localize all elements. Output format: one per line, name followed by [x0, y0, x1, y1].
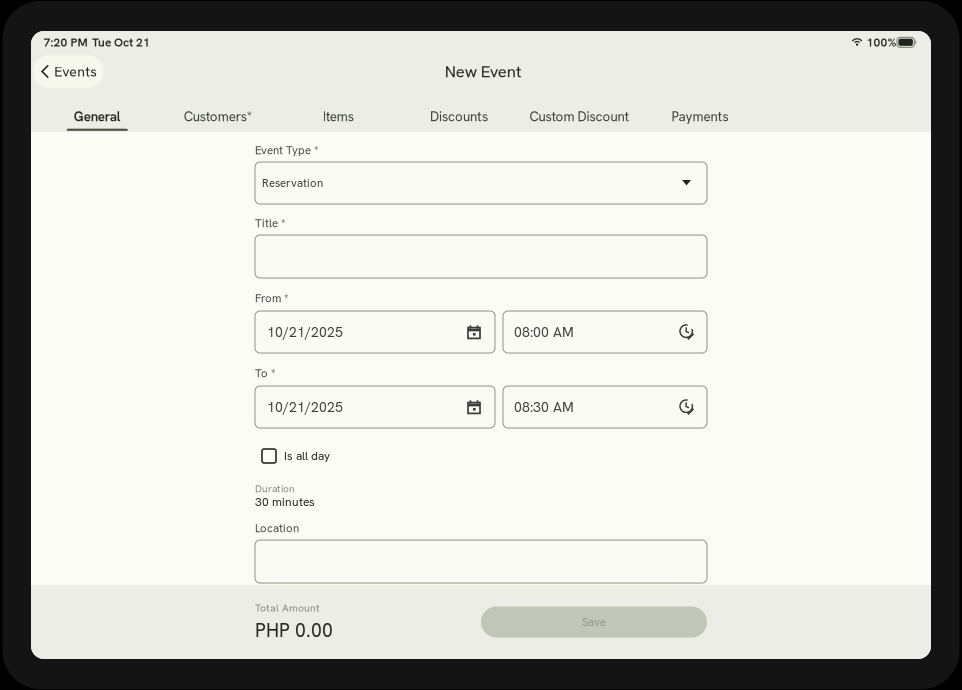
button[interactable]: 08:30 AM — [503, 386, 707, 428]
staticText: Is all day — [284, 448, 330, 464]
staticText: Reservation — [262, 176, 323, 190]
staticText: 10/21/2025 — [267, 323, 343, 341]
staticText: From * — [255, 291, 289, 306]
button[interactable]: Is all day — [255, 449, 330, 463]
staticText: Location — [255, 521, 299, 536]
button[interactable] — [255, 540, 707, 583]
button[interactable]: General — [37, 105, 157, 140]
button[interactable] — [255, 235, 707, 278]
staticText: Items — [323, 108, 354, 125]
button[interactable]: 10/21/2025 — [255, 386, 495, 428]
button[interactable]: Custom Discount — [519, 105, 640, 140]
staticText: Events — [54, 62, 97, 81]
button[interactable]: Discounts — [399, 105, 519, 140]
button[interactable]: 10/21/2025 — [255, 311, 495, 353]
staticText: Duration — [255, 482, 295, 495]
staticText: PHP 0.00 — [255, 618, 333, 643]
staticText: Customers* — [184, 108, 252, 125]
staticText: 30 minutes — [255, 494, 315, 510]
staticText: General — [74, 108, 121, 125]
staticText: 100% — [866, 34, 896, 50]
staticText: Event Type * — [255, 143, 319, 158]
button[interactable]: Customers* — [157, 105, 278, 140]
staticText: 08:00 AM — [514, 323, 574, 341]
staticText: 10/21/2025 — [267, 398, 343, 416]
staticText: Discounts — [430, 108, 488, 125]
staticText: Custom Discount — [529, 108, 629, 125]
button[interactable]: Reservation — [255, 162, 707, 204]
staticText: Payments — [671, 108, 728, 125]
staticText: Save — [582, 615, 606, 629]
button[interactable]: Payments — [640, 105, 760, 140]
staticText: 7:20 PM — [43, 34, 87, 50]
button[interactable]: 08:00 AM — [503, 311, 707, 353]
staticText: 08:30 AM — [514, 398, 574, 416]
staticText: To * — [255, 366, 276, 381]
staticText: Tue Oct 21 — [92, 34, 150, 50]
button[interactable]: Save — [481, 606, 707, 637]
staticText: Title * — [255, 216, 286, 231]
button[interactable]: Items — [278, 105, 399, 140]
button[interactable]: Events — [33, 55, 103, 88]
staticText: Total Amount — [255, 601, 320, 615]
staticText: New Event — [445, 60, 522, 82]
